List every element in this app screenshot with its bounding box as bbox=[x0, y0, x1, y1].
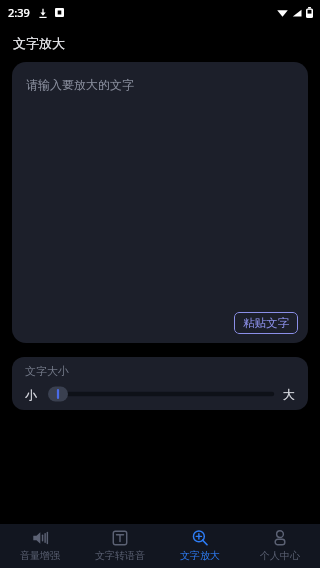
staticText: 文字转语音 bbox=[95, 549, 145, 562]
staticText: 请输入要放大的文字 bbox=[26, 77, 134, 92]
button[interactable]: 文字转语音 bbox=[80, 524, 160, 568]
staticText: 文字大小 bbox=[25, 364, 69, 378]
staticText: 个人中心 bbox=[260, 549, 300, 562]
button[interactable]: 个人中心 bbox=[240, 524, 320, 568]
staticText: 小 bbox=[25, 387, 37, 402]
button[interactable]: 文字放大 bbox=[160, 524, 240, 568]
staticText: 文字放大 bbox=[13, 35, 65, 51]
staticText: 音量增强 bbox=[20, 549, 60, 562]
staticText: 文字放大 bbox=[180, 549, 220, 562]
staticText: 粘贴文字 bbox=[243, 316, 289, 330]
button[interactable]: 粘贴文字 bbox=[234, 312, 298, 334]
button[interactable]: 音量增强 bbox=[0, 524, 80, 568]
staticText: 2:39 bbox=[8, 5, 30, 20]
staticText: 大 bbox=[283, 387, 295, 402]
button[interactable] bbox=[46, 385, 274, 403]
button[interactable]: 请输入要放大的文字 bbox=[12, 62, 308, 343]
